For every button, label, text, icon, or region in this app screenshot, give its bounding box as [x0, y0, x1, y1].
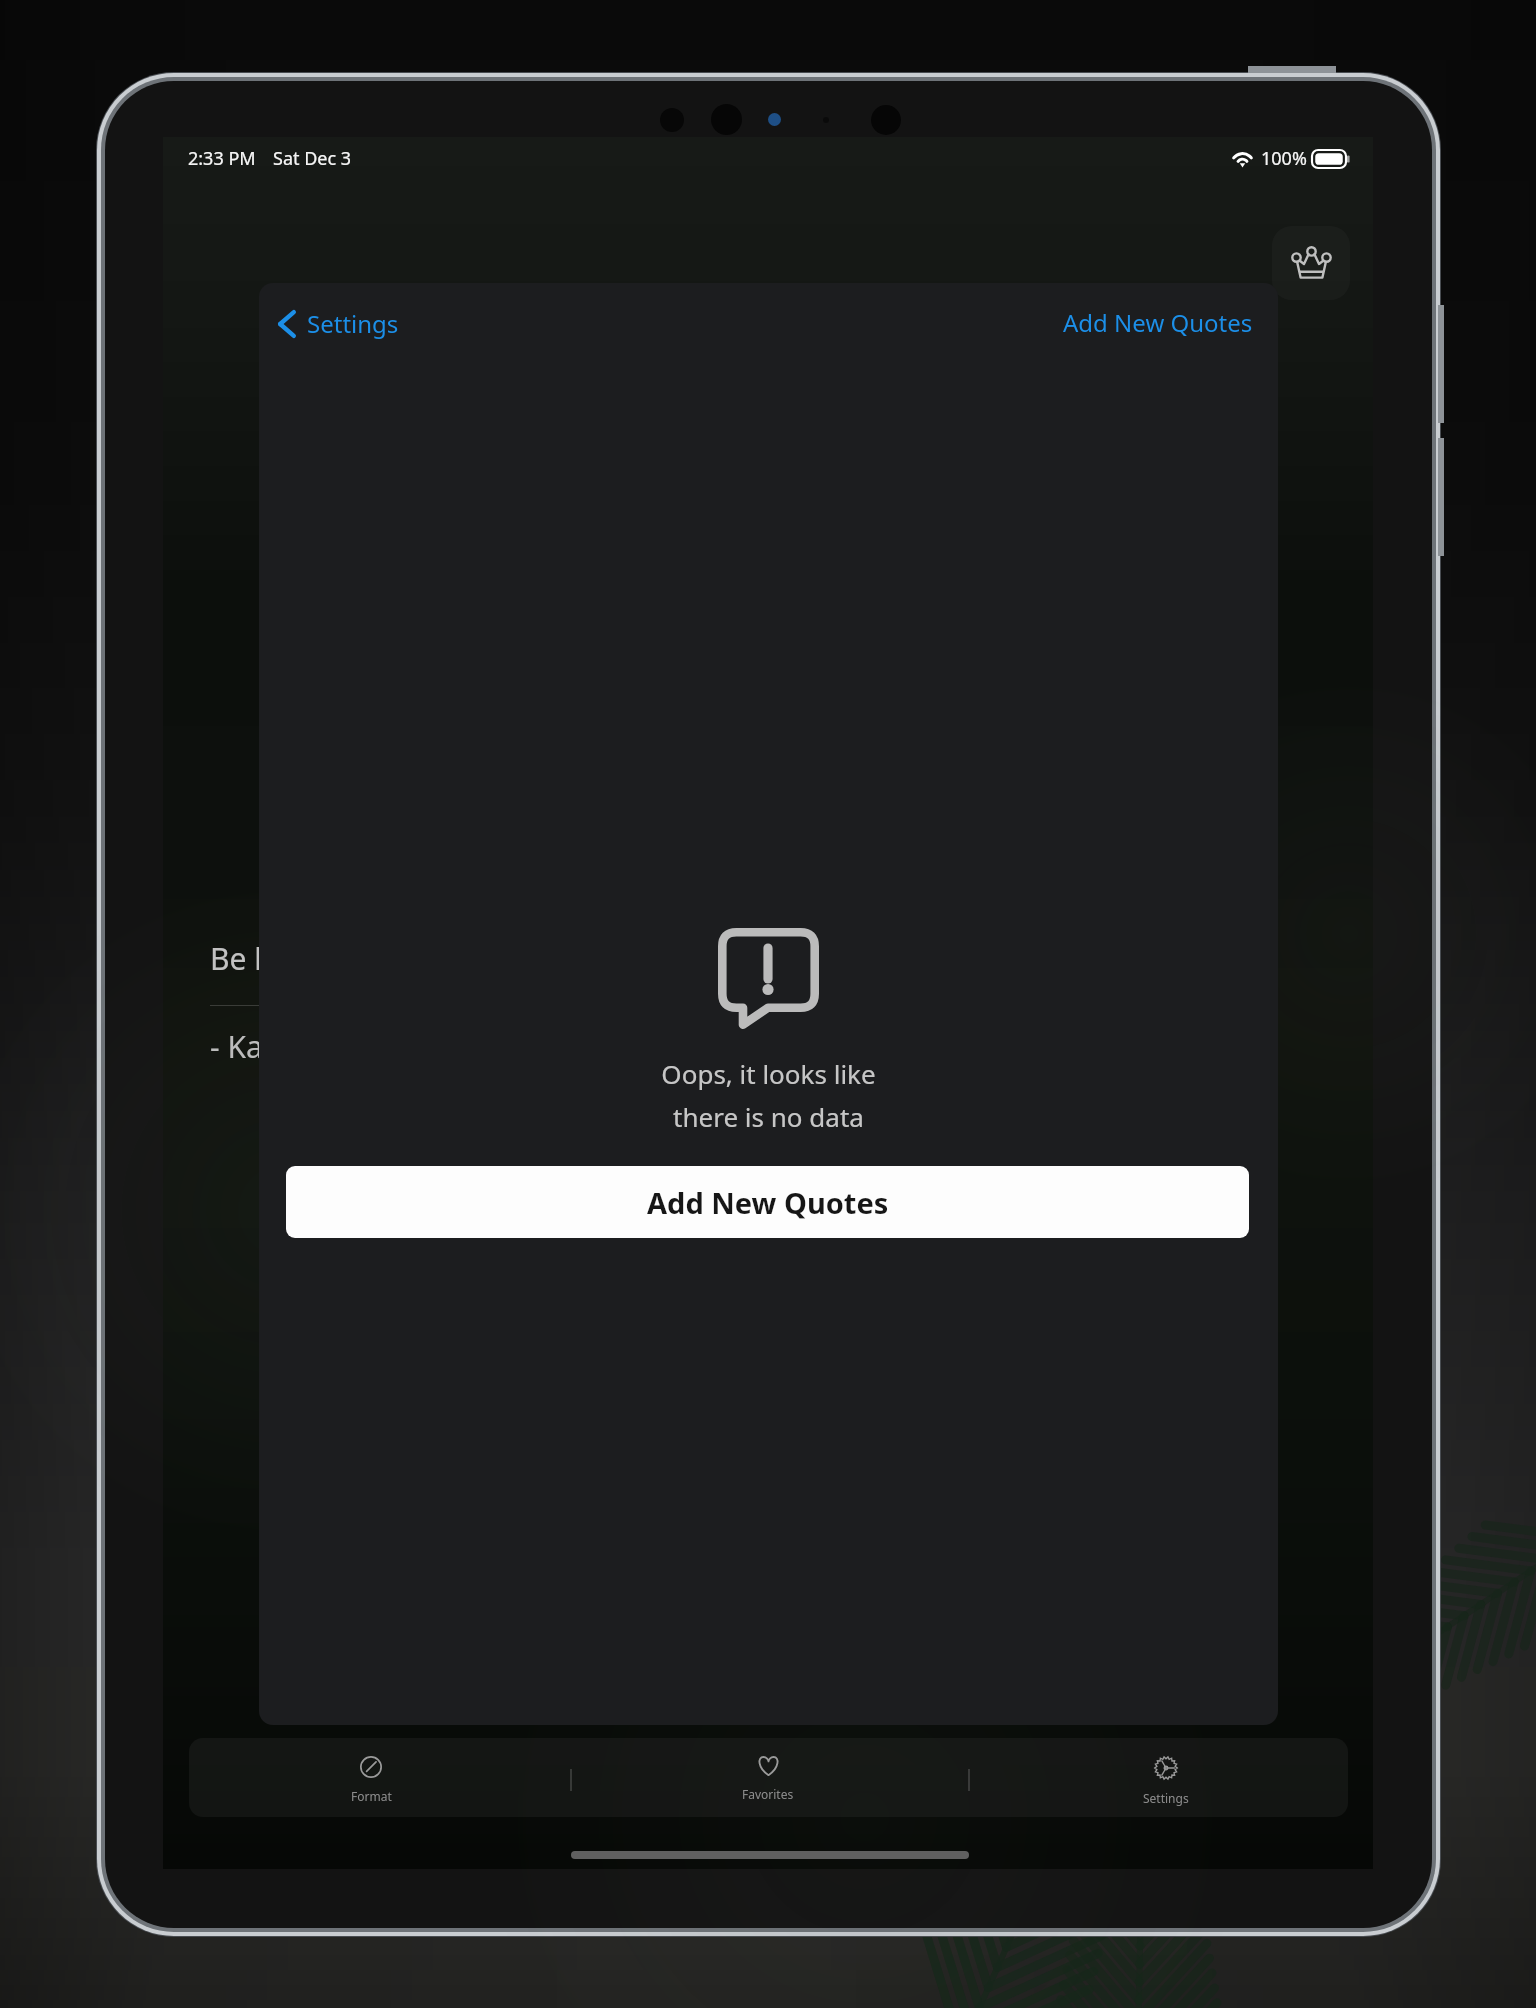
staticText: - Kahlil Gibran: [210, 1026, 408, 1067]
staticText: Favorites: [742, 1786, 794, 1802]
staticText: Format: [351, 1788, 392, 1804]
button[interactable]: Settings: [1076, 1738, 1256, 1817]
button[interactable]: Add New Quotes: [1057, 300, 1259, 345]
staticText: Add New Quotes: [647, 1183, 889, 1222]
button[interactable]: Favorites: [678, 1738, 858, 1817]
staticText: Sat Dec 3: [273, 146, 352, 171]
staticText: Settings: [1143, 1790, 1189, 1806]
button[interactable]: Premium: [1272, 226, 1350, 300]
staticText: Be like the flower that gives its fragra…: [210, 938, 783, 979]
staticText: Add New Quotes: [1063, 306, 1253, 339]
staticText: 100%: [1261, 146, 1307, 171]
button[interactable]: Settings: [272, 301, 405, 346]
staticText: there is no data: [673, 1099, 864, 1134]
staticText: 2:33 PM: [188, 146, 256, 171]
staticText: Oops, it looks like: [661, 1056, 876, 1091]
button[interactable]: Format: [281, 1738, 461, 1817]
button[interactable]: Add New Quotes: [286, 1166, 1249, 1238]
staticText: Settings: [307, 307, 399, 340]
